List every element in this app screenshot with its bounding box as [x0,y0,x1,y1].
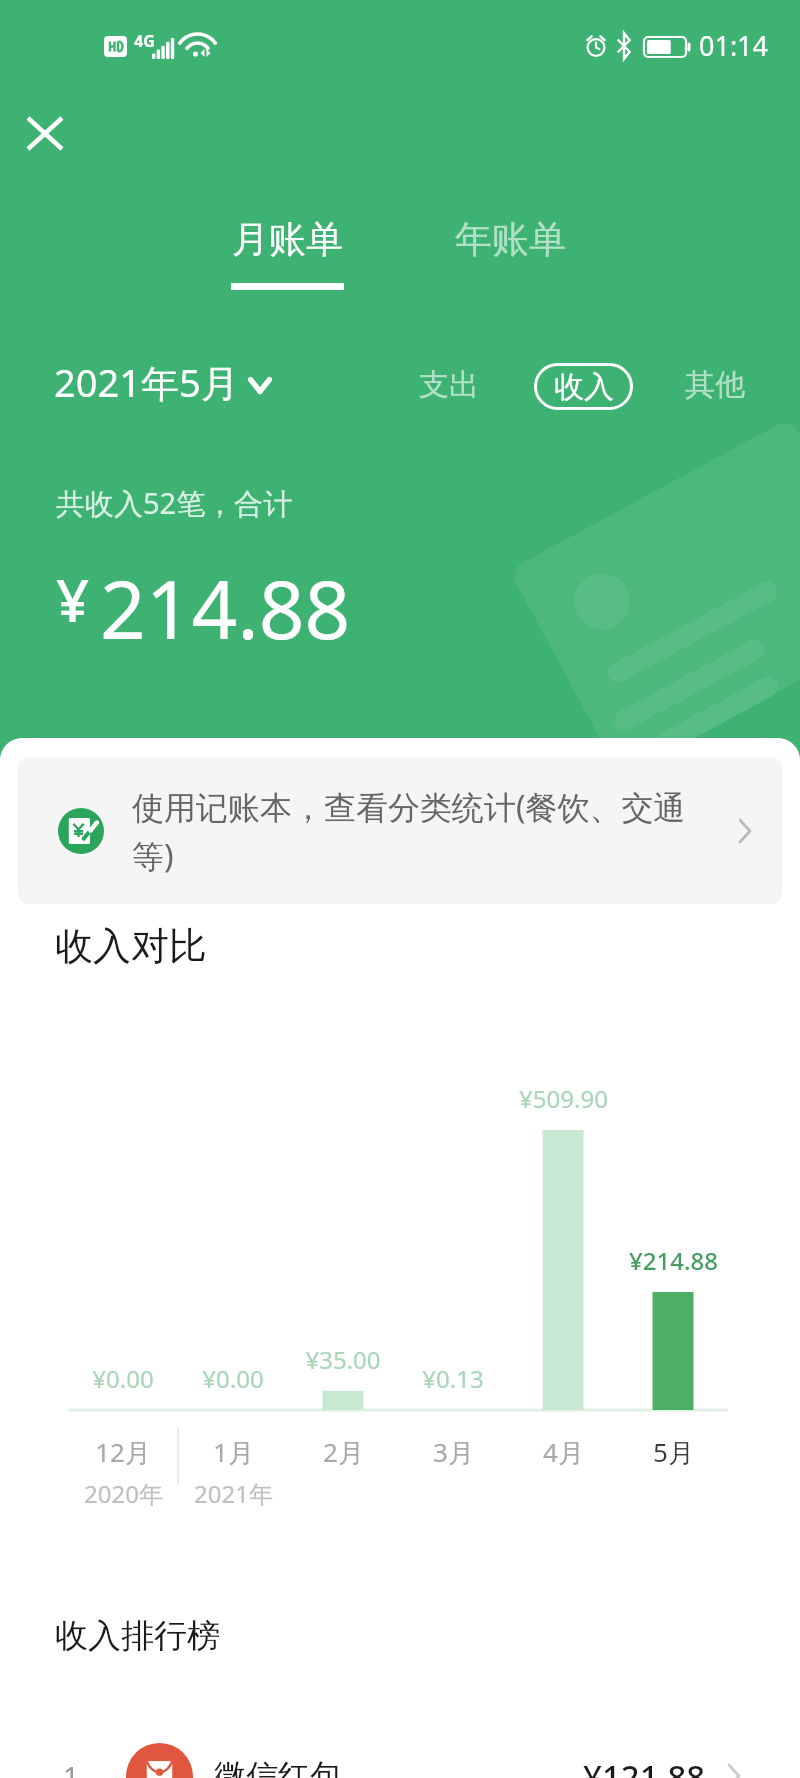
staticText: 1 [63,1757,80,1778]
other: More [728,814,762,848]
staticText: 其他 [685,366,745,404]
staticText: 收入 [554,368,614,406]
staticText: 年账单 [455,216,566,263]
button[interactable]: 1 [0,1720,800,1778]
button[interactable]: 2021年5月 [48,350,285,414]
button[interactable]: 使用记账本，查看分类统计(餐饮、交通等) [18,757,782,904]
staticText: 支出 [419,366,479,404]
staticText: ¥0.13 [422,1362,484,1395]
button[interactable]: 月账单 [221,210,354,296]
staticText: ¥121.88 [583,1754,706,1778]
staticText: 4月 [543,1434,584,1470]
staticText: 214.88 [100,553,351,662]
staticText: 微信红包 [214,1756,342,1778]
staticText: 2020年 [84,1477,163,1510]
button[interactable]: 其他 [669,354,761,416]
staticText: ¥35.00 [305,1343,381,1376]
staticText: 收入对比 [55,922,207,970]
staticText: 共收入52笔，合计 [56,483,293,523]
staticText: ¥0.00 [92,1362,154,1395]
staticText: 2月 [323,1434,364,1470]
staticText: 01:14 [699,27,769,64]
staticText: 12月 [95,1434,151,1470]
button[interactable]: 收入 [534,363,633,410]
button[interactable]: 年账单 [445,210,576,269]
staticText: 月账单 [232,216,343,263]
staticText: ¥214.88 [629,1244,718,1277]
staticText: 使用记账本，查看分类统计(餐饮、交通等) [132,785,692,877]
staticText: 3月 [433,1434,474,1470]
staticText: 2021年 [194,1477,273,1510]
staticText: ¥ [56,560,90,639]
staticText: 4G [134,30,155,52]
staticText: 5月 [653,1434,694,1470]
button[interactable]: Close [0,88,90,178]
button[interactable]: 支出 [403,354,495,416]
staticText: 2021年5月 [54,356,239,408]
staticText: 1月 [213,1434,254,1470]
staticText: ¥509.90 [519,1082,608,1115]
staticText: 收入排行榜 [55,1615,220,1657]
staticText: ¥0.00 [202,1362,264,1395]
